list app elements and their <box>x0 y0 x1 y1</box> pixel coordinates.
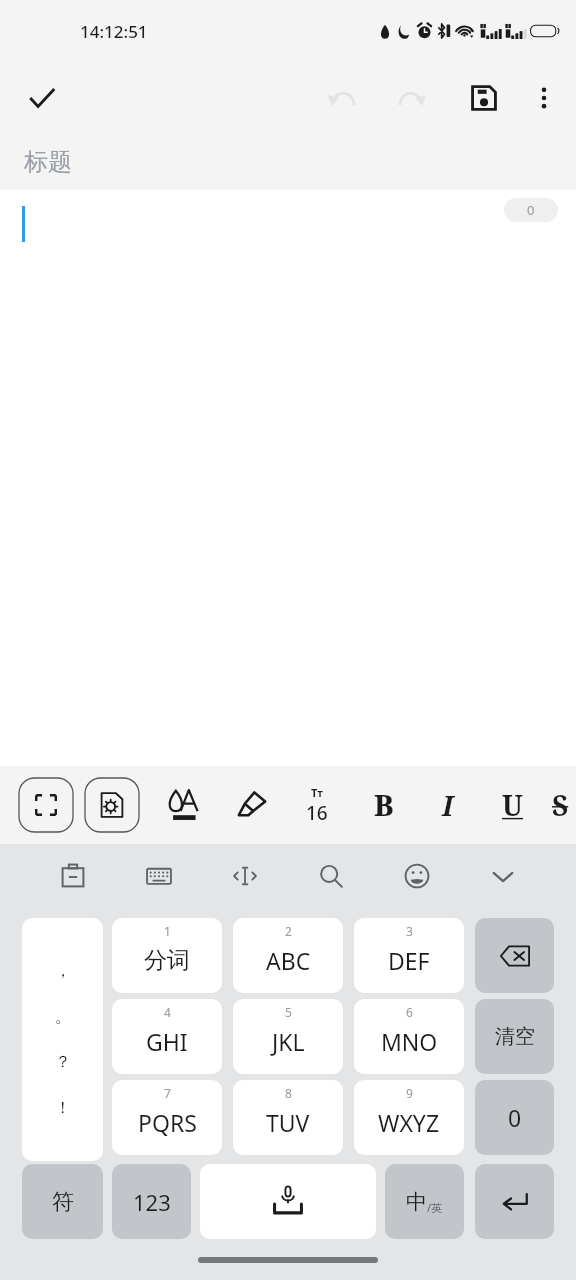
button[interactable]: 清空 <box>475 999 554 1074</box>
staticText: MNO <box>381 1026 438 1057</box>
staticText: WXYZ <box>378 1107 440 1138</box>
staticText: GHI <box>146 1026 188 1057</box>
staticText: 9 <box>406 1085 413 1101</box>
staticText: I <box>442 786 454 824</box>
button[interactable]: Fullscreen <box>16 775 76 835</box>
staticText: 3 <box>406 923 413 939</box>
staticText: ， <box>55 961 71 981</box>
staticText: 中 <box>406 1189 427 1215</box>
button[interactable]: 8 <box>233 1080 343 1155</box>
button[interactable]: 1 <box>112 918 222 993</box>
staticText: 标题 <box>24 147 72 177</box>
button[interactable]: Save <box>456 70 512 126</box>
staticText: 1 <box>164 923 171 939</box>
button[interactable]: 中 <box>385 1164 464 1239</box>
button[interactable]: 5 <box>233 999 343 1074</box>
staticText: 分词 <box>144 946 190 975</box>
button[interactable]: Enter <box>475 1164 554 1239</box>
staticText: 7 <box>164 1085 171 1101</box>
button[interactable]: I <box>416 774 480 836</box>
staticText: 清空 <box>495 1024 535 1049</box>
staticText: /英 <box>427 1200 443 1215</box>
button[interactable]: Keyboard layout <box>132 849 186 903</box>
staticText: Tт <box>311 785 323 800</box>
button[interactable]: 0 <box>475 1080 554 1155</box>
staticText: B <box>374 786 394 824</box>
staticText: 123 <box>133 1187 171 1217</box>
staticText: DEF <box>388 945 430 976</box>
staticText: U <box>502 786 523 824</box>
button[interactable]: Undo <box>314 70 370 126</box>
staticText: 5 <box>285 1004 292 1020</box>
button[interactable]: 7 <box>112 1080 222 1155</box>
button[interactable]: S <box>544 774 576 836</box>
button[interactable]: Punctuation <box>22 918 103 1161</box>
button[interactable]: More options <box>518 72 570 124</box>
staticText: S <box>552 786 569 824</box>
staticText: 6 <box>406 1004 413 1020</box>
staticText: ABC <box>266 945 311 976</box>
button[interactable]: 123 <box>112 1164 191 1239</box>
button[interactable]: Space / voice input <box>200 1164 376 1239</box>
button[interactable]: 4 <box>112 999 222 1074</box>
button[interactable]: Move cursor <box>218 849 272 903</box>
button[interactable]: Highlight <box>226 779 278 831</box>
staticText: 16 <box>306 800 328 826</box>
button[interactable]: Clipboard <box>46 849 100 903</box>
button[interactable]: Document settings <box>82 775 142 835</box>
button[interactable]: Search <box>304 849 358 903</box>
staticText: ！ <box>55 1098 71 1118</box>
staticText: 0 <box>527 201 535 219</box>
button[interactable]: Redo <box>384 70 440 126</box>
staticText: ？ <box>55 1052 71 1072</box>
button[interactable]: 9 <box>354 1080 464 1155</box>
staticText: 14:12:51 <box>80 20 148 43</box>
staticText: 0 <box>508 1102 522 1133</box>
button[interactable]: Emoji <box>390 849 444 903</box>
staticText: 4 <box>164 1004 171 1020</box>
staticText: 。 <box>55 1007 71 1027</box>
button[interactable]: Text color <box>158 779 210 831</box>
button[interactable]: 2 <box>233 918 343 993</box>
staticText: 8 <box>285 1085 292 1101</box>
button[interactable]: 符 <box>22 1164 103 1239</box>
button[interactable]: B <box>352 774 416 836</box>
button[interactable]: Done <box>14 70 70 126</box>
button[interactable]: 3 <box>354 918 464 993</box>
button[interactable]: 6 <box>354 999 464 1074</box>
button[interactable]: Font size 16 <box>290 778 344 832</box>
button[interactable]: Backspace <box>475 918 554 993</box>
staticText: 符 <box>52 1188 74 1216</box>
button[interactable]: U <box>480 774 544 836</box>
staticText: 2 <box>285 923 292 939</box>
button[interactable]: Hide keyboard <box>476 849 530 903</box>
staticText: JKL <box>272 1026 305 1057</box>
staticText: PQRS <box>138 1107 197 1138</box>
staticText: TUV <box>266 1107 310 1138</box>
